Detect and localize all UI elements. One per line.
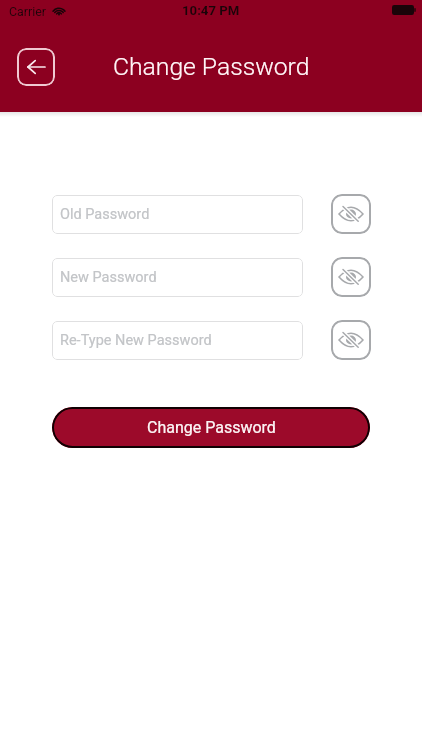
button[interactable]: Old Password <box>52 195 303 234</box>
staticText: Old Password <box>60 206 150 223</box>
button[interactable]: Show password <box>331 320 371 360</box>
staticText: Re-Type New Password <box>60 332 212 349</box>
button[interactable]: New Password <box>52 258 303 297</box>
staticText: New Password <box>60 269 157 286</box>
button[interactable]: Show password <box>331 257 371 297</box>
staticText: Carrier <box>9 4 46 19</box>
button[interactable]: Change Password <box>52 407 370 448</box>
button[interactable]: Back <box>17 48 55 86</box>
staticText: Change Password <box>113 52 310 81</box>
button[interactable]: Re-Type New Password <box>52 321 303 360</box>
button[interactable]: Show password <box>331 194 371 234</box>
staticText: Change Password <box>147 418 276 437</box>
staticText: 10:47 PM <box>182 3 240 18</box>
